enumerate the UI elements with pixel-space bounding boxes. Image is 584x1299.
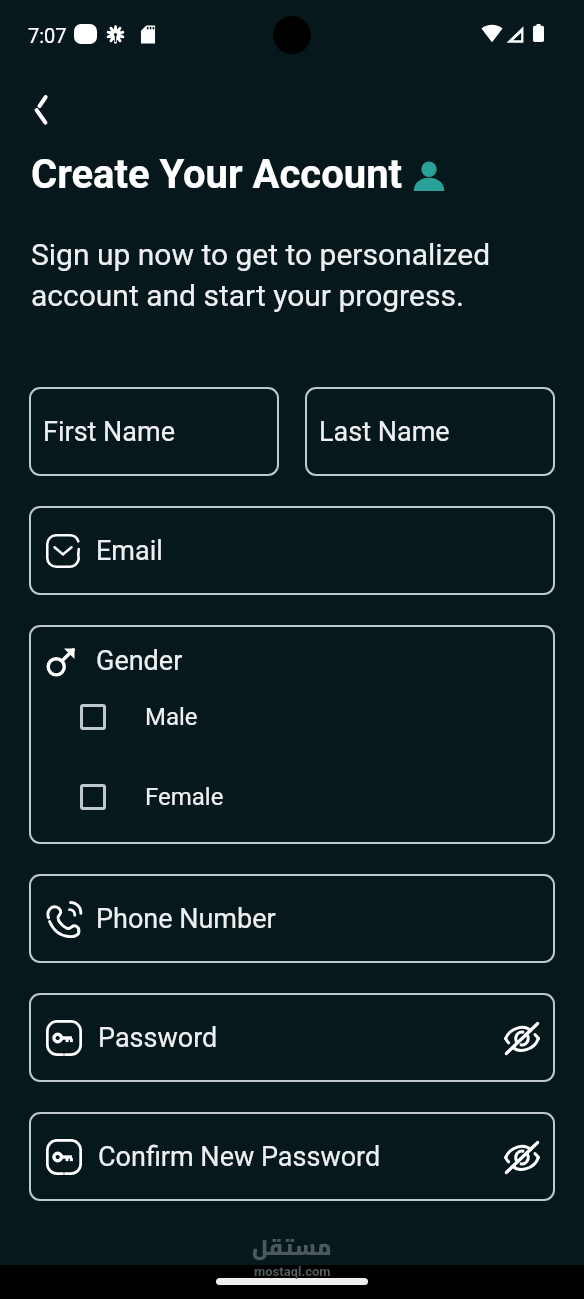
staticText: Password <box>98 1022 218 1054</box>
button[interactable]: Female <box>29 777 555 817</box>
button[interactable]: Phone Number <box>29 874 555 963</box>
button[interactable]: Last Name <box>305 387 555 476</box>
button[interactable]: Back <box>13 81 65 133</box>
staticText: مستقل <box>252 1226 332 1267</box>
staticText: Female <box>145 783 224 811</box>
staticText: Email <box>96 535 163 567</box>
button[interactable]: Email <box>29 506 555 595</box>
staticText: 7:07 <box>28 24 67 44</box>
staticText: First Name <box>43 416 176 448</box>
button[interactable]: Show password <box>498 1014 546 1062</box>
button[interactable]: Male <box>29 697 555 737</box>
staticText: mostaql.com <box>254 1264 331 1279</box>
button[interactable]: Show password <box>498 1133 546 1181</box>
staticText: Sign up now to get to personalized accou… <box>31 237 491 313</box>
staticText: Create Your Account <box>31 151 403 198</box>
staticText: Phone Number <box>96 903 276 935</box>
button[interactable]: First Name <box>29 387 279 476</box>
button[interactable]: Password <box>29 993 555 1082</box>
button[interactable]: Confirm New Password <box>29 1112 555 1201</box>
staticText: Male <box>145 703 198 731</box>
staticText: Confirm New Password <box>98 1141 381 1173</box>
staticText: Last Name <box>319 416 450 448</box>
staticText: Gender <box>96 645 183 677</box>
